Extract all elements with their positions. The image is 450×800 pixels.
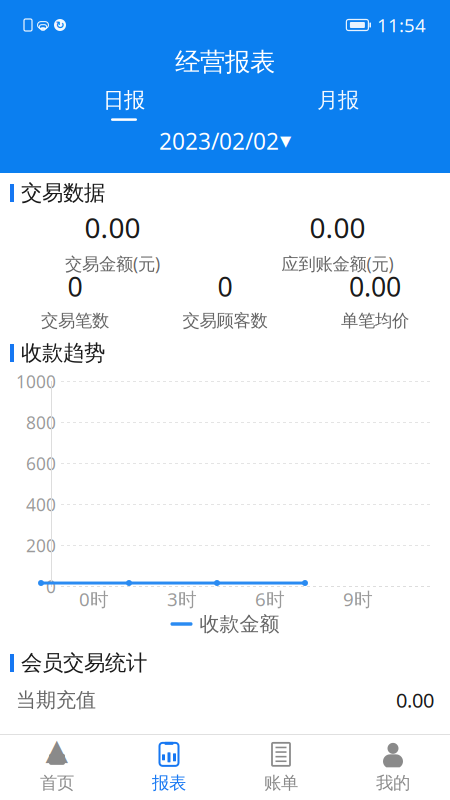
staticText: 0.00 [309, 209, 365, 246]
staticText: 2023/02/02 [159, 126, 279, 156]
button[interactable]: 账单 [225, 735, 337, 800]
staticText: 日报 [103, 87, 145, 113]
staticText: 0.00 [84, 209, 140, 246]
staticText: 首页 [40, 772, 74, 794]
button[interactable]: ▲ [1, 735, 113, 800]
button[interactable]: 月报 [310, 87, 366, 121]
staticText: 单笔均价 [341, 310, 409, 331]
staticText: 9时 [343, 587, 373, 611]
staticText: 0 [217, 269, 232, 304]
staticText: ▲ [45, 733, 68, 766]
staticText: 收款金额 [199, 612, 279, 636]
staticText: 0 [67, 269, 82, 304]
staticText: 3时 [167, 587, 197, 611]
staticText: 1000 [16, 370, 56, 393]
button[interactable]: 日报 [96, 87, 152, 121]
staticText: 200 [26, 534, 56, 557]
staticText: 交易数据 [21, 180, 105, 206]
staticText: 400 [26, 493, 56, 516]
staticText: 11:54 [377, 13, 426, 37]
staticText: 6时 [255, 587, 285, 611]
staticText: 账单 [264, 772, 298, 794]
staticText: 收款趋势 [21, 340, 105, 366]
staticText: 我的 [376, 772, 410, 794]
staticText: 应到账金额(元) [281, 252, 393, 275]
staticText: 交易笔数 [41, 310, 109, 331]
staticText: 报表 [152, 772, 186, 794]
staticText: ▼ [280, 133, 291, 149]
staticText: 交易金额(元) [65, 252, 160, 275]
staticText: 交易顾客数 [182, 310, 267, 331]
staticText: 当期充值 [16, 688, 96, 712]
button[interactable]: 我的 [337, 735, 449, 800]
staticText: 月报 [317, 87, 359, 113]
staticText: 0 [46, 575, 56, 598]
staticText: ↻ [55, 19, 64, 31]
button[interactable]: 报表 [113, 735, 225, 800]
staticText: 经营报表 [175, 46, 275, 77]
staticText: 0时 [79, 587, 109, 611]
staticText: 600 [26, 452, 56, 475]
staticText: 800 [26, 411, 56, 434]
staticText: 0.00 [349, 269, 401, 304]
staticText: 0.00 [396, 687, 434, 713]
button[interactable]: 2023/02/02 [149, 124, 301, 158]
staticText: 会员交易统计 [21, 650, 147, 676]
